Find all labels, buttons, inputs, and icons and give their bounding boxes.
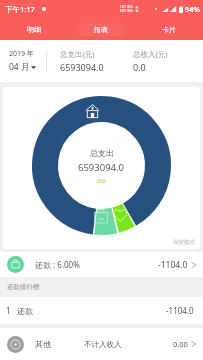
staticText: 其他: [35, 339, 51, 349]
staticText: 6593094.0: [78, 161, 125, 174]
button[interactable]: 卡片: [135, 18, 203, 40]
button[interactable]: 明细: [0, 18, 67, 40]
button[interactable]: 报表: [67, 18, 135, 40]
staticText: 0.00: [173, 339, 188, 349]
staticText: 0.02 KB/s: [120, 9, 134, 13]
staticText: -1104.0: [158, 259, 188, 271]
staticText: 总收入(元): [133, 49, 168, 59]
staticText: 2019 年: [9, 49, 34, 59]
staticText: 还款: [17, 306, 33, 316]
staticText: 6593094.0: [60, 61, 104, 73]
staticText: 0.0: [133, 61, 146, 73]
button[interactable]: 还款 : 6.00%: [0, 252, 203, 277]
staticText: 明细: [27, 25, 41, 34]
button[interactable]: 保密模式: [173, 239, 200, 249]
staticText: 下午1:17: [5, 4, 35, 14]
staticText: 不计入收入: [84, 340, 122, 349]
button[interactable]: 其他: [0, 328, 203, 360]
staticText: 94%: [185, 4, 201, 14]
staticText: 总支出: [90, 148, 114, 158]
staticText: 还款 : 6.00%: [35, 259, 80, 270]
staticText: 1: [6, 305, 11, 316]
staticText: 04 月: [9, 61, 30, 73]
staticText: 报表: [94, 25, 108, 34]
staticText: 总支出(元): [60, 49, 95, 59]
staticText: -1104.0: [166, 305, 194, 316]
button[interactable]: 1: [0, 297, 203, 324]
staticText: 还款排行榜: [7, 283, 40, 291]
staticText: 卡片: [162, 25, 176, 34]
staticText: 1.07 KB/s: [120, 5, 134, 9]
